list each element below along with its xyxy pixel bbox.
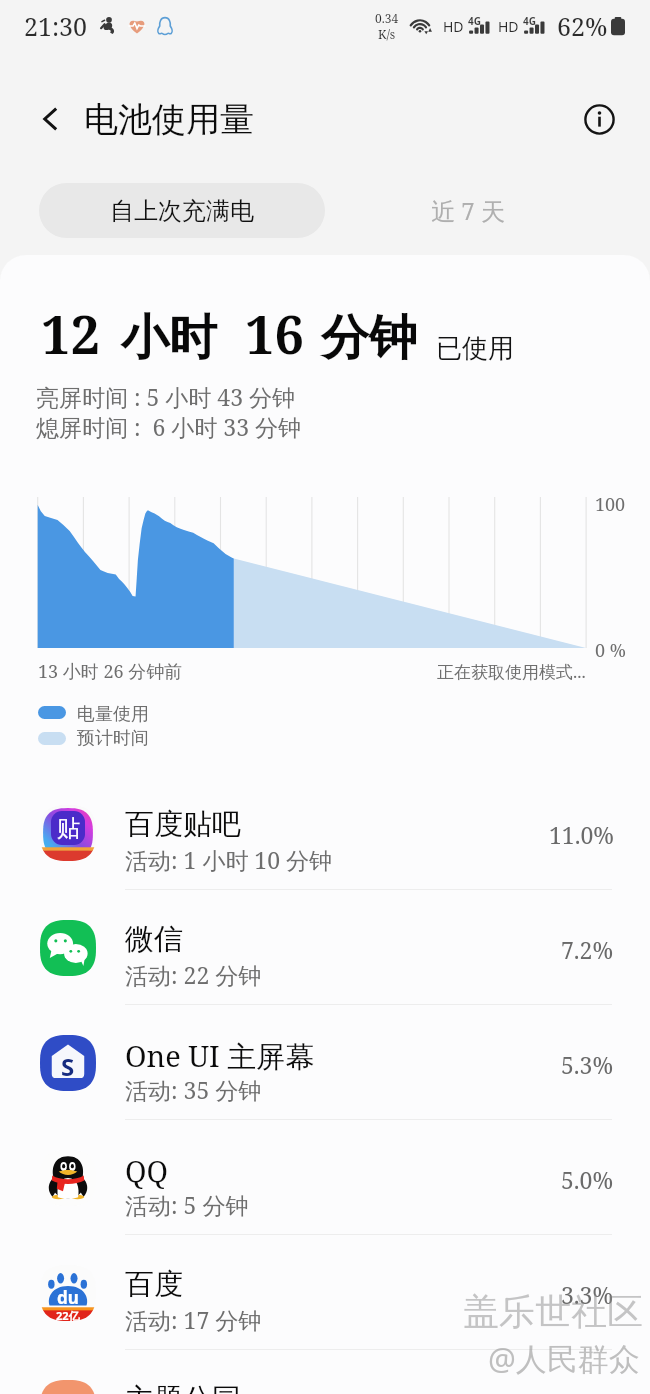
staticText: 5.0% [561,1164,614,1195]
staticText: 活动: 17 分钟 [125,1304,262,1335]
staticText: 13 小时 26 分钟前 [38,659,183,684]
staticText: One UI 主屏幕 [125,1036,315,1076]
staticText: K/s [378,26,396,42]
staticText: 亮屏时间 : 5 小时 43 分钟 [36,381,296,412]
staticText: 活动: 22 分钟 [125,959,262,990]
staticText: 0 % [595,638,626,663]
staticText: 近 7 天 [431,194,505,227]
staticText: 百度贴吧 [125,806,241,843]
button[interactable]: 贴 [0,775,650,890]
staticText: 活动: 1 小时 10 分钟 [125,844,333,875]
staticText: @人民群众 [488,1337,640,1379]
button[interactable]: 近 7 天 [338,183,598,238]
staticText: 贴 [57,814,80,843]
staticText: 5.3% [561,1049,614,1080]
staticText: QQ [125,1151,169,1190]
staticText: 主题公园 [125,1381,241,1394]
staticText: 16 [245,298,304,369]
staticText: 4G [523,14,536,28]
staticText: 12 [41,298,100,369]
staticText: 3.3% [561,1279,614,1310]
staticText: 0.34 [375,10,399,26]
staticText: 电量使用 [77,703,149,726]
staticText: 活动: 35 分钟 [125,1074,262,1105]
button[interactable]: S [0,1005,650,1120]
staticText: 活动: 5 分钟 [125,1189,249,1220]
staticText: 22亿 [56,1308,80,1323]
staticText: 熄屏时间 : 6 小时 33 分钟 [36,411,302,442]
staticText: 预计时间 [77,727,149,750]
button[interactable]: 微信 [0,890,650,1005]
staticText: 7.2% [561,934,614,965]
staticText: 21:30 [24,9,88,43]
button[interactable]: 自上次充满电 [39,183,325,238]
staticText: du [57,1286,79,1309]
staticText: 自上次充满电 [110,196,254,226]
staticText: 百度 [125,1266,183,1303]
button[interactable]: Information [575,95,623,143]
staticText: 4G [468,14,481,28]
staticText: 微信 [125,921,183,958]
staticText: 分钟 [321,308,417,368]
staticText: 正在获取使用模式... [437,660,586,683]
button[interactable]: Back [30,98,72,140]
button[interactable]: du [0,1235,650,1350]
staticText: 100 [595,492,626,517]
staticText: 电池使用量 [84,98,254,141]
staticText: HD [443,17,464,36]
button[interactable]: QQ [0,1120,650,1235]
staticText: 11.0% [549,819,614,850]
staticText: 62% [557,9,608,43]
staticText: 已使用 [436,332,514,365]
staticText: 盖乐世社区 [463,1289,643,1334]
staticText: 小时 [121,308,217,368]
staticText: S [61,1050,75,1083]
staticText: HD [498,17,519,36]
button[interactable]: 主题公园 [0,1350,650,1394]
